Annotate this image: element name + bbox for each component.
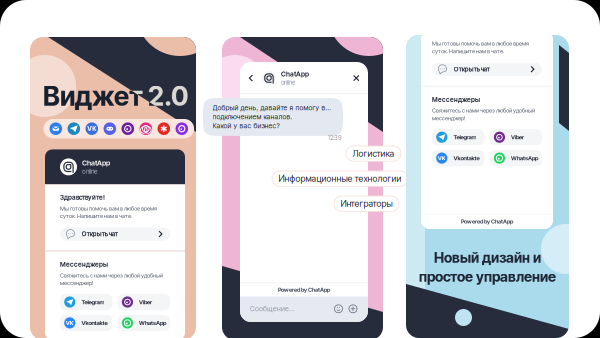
staticText: Свяжитесь с нами через любой удобный — [432, 107, 535, 114]
button[interactable]: Открыть чат — [432, 63, 542, 76]
button[interactable]: Viber — [118, 294, 170, 310]
staticText: Viber — [139, 298, 152, 306]
staticText: Интеграторы — [340, 198, 392, 209]
staticText: Здравствуйте! — [60, 193, 105, 201]
staticText: суток. Напишите нам в чате. — [432, 48, 504, 55]
staticText: Powered by ChatApp — [278, 286, 330, 293]
staticText: Powered by ChatApp — [461, 218, 513, 225]
staticText: ChatApp — [82, 158, 110, 167]
staticText: суток. Напишите нам в чате. — [60, 212, 132, 219]
button[interactable]: VK — [432, 150, 484, 166]
staticText: Какой у вас бизнес? — [212, 121, 279, 130]
staticText: Информационные технологии — [278, 173, 401, 184]
staticText: WhatsApp — [511, 155, 538, 162]
staticText: ChatApp — [281, 70, 309, 78]
staticText: Telegram — [81, 298, 104, 306]
button[interactable]: Интеграторы — [334, 196, 399, 211]
staticText: Мы готовы помочь вам в любое время — [432, 40, 529, 47]
staticText: online — [82, 168, 97, 175]
staticText: Viber — [511, 134, 524, 141]
staticText: Открыть чат — [82, 230, 118, 238]
staticText: простое управление — [419, 268, 556, 285]
button[interactable]: WhatsApp — [118, 315, 170, 331]
staticText: Мы готовы помочь вам в любое время — [60, 205, 157, 212]
staticText: VK — [438, 155, 446, 162]
staticText: VK — [87, 125, 96, 132]
staticText: мессенджер! — [60, 279, 93, 286]
staticText: Виджет 2.0 — [43, 80, 188, 112]
staticText: Свяжитесь с нами через любой удобный — [60, 272, 163, 279]
button[interactable]: Информационные технологии — [272, 171, 408, 186]
staticText: Виджет 2.0 — [43, 80, 188, 112]
staticText: WhatsApp — [139, 319, 166, 326]
button[interactable]: Telegram — [60, 294, 112, 310]
staticText: VK — [66, 319, 74, 326]
staticText: Открыть чат — [454, 65, 490, 73]
staticText: Telegram — [453, 134, 476, 141]
button[interactable]: Логистика — [346, 146, 401, 161]
staticText: Добрый день, давайте я помогу вам с — [212, 103, 333, 112]
button[interactable]: VK — [60, 315, 112, 331]
button[interactable]: Telegram — [432, 129, 484, 145]
staticText: Vkontakte — [81, 319, 107, 326]
staticText: Логистика — [352, 148, 394, 159]
staticText: Vkontakte — [453, 155, 479, 162]
staticText: Мессенджеры — [432, 96, 480, 103]
button[interactable]: WhatsApp — [490, 150, 542, 166]
staticText: подключением каналов. — [212, 112, 292, 121]
button[interactable]: Открыть чат — [60, 227, 170, 241]
button[interactable]: Viber — [490, 129, 542, 145]
staticText: 12:39 — [328, 134, 341, 141]
staticText: online — [281, 79, 295, 86]
staticText: Новый дизайн и — [434, 249, 541, 266]
staticText: Мессенджеры — [60, 260, 108, 268]
staticText: мессенджер! — [432, 115, 465, 121]
staticText: Сообщение... — [250, 305, 295, 313]
